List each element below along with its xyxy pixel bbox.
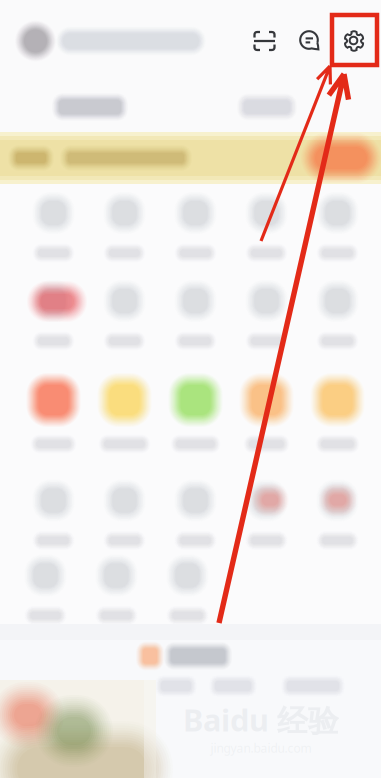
button[interactable]: Service — [231, 184, 302, 272]
button[interactable]: Service — [18, 474, 89, 549]
button[interactable]: Service — [160, 474, 231, 549]
button[interactable]: Service — [302, 367, 373, 474]
button[interactable]: Service — [89, 474, 160, 549]
button[interactable]: Service — [18, 367, 89, 474]
button[interactable]: Service — [231, 474, 302, 549]
button[interactable]: Service — [160, 272, 231, 367]
button[interactable]: Service — [231, 272, 302, 367]
button[interactable]: Recipe article — [0, 640, 381, 778]
button[interactable]: Service — [302, 272, 373, 367]
button[interactable]: Service — [81, 549, 152, 624]
button[interactable]: Service — [89, 184, 160, 272]
button[interactable]: Scan — [253, 29, 276, 52]
button[interactable]: Service — [231, 367, 302, 474]
button[interactable]: Tab one — [52, 93, 128, 121]
button[interactable]: Settings — [343, 30, 365, 52]
button[interactable]: Service — [302, 184, 373, 272]
button[interactable]: Service — [160, 367, 231, 474]
button[interactable]: Service — [302, 474, 373, 549]
button[interactable]: Service — [89, 272, 160, 367]
button[interactable]: Service — [152, 549, 223, 624]
button[interactable]: Service — [10, 549, 81, 624]
button[interactable]: Service — [18, 184, 89, 272]
button[interactable]: Promotion banner — [0, 132, 381, 184]
staticText: Baidu 经验 — [183, 699, 339, 740]
button[interactable]: Service — [89, 367, 160, 474]
button[interactable]: Tab two — [237, 93, 297, 120]
button[interactable]: Service — [160, 184, 231, 272]
button[interactable]: Messages — [299, 30, 321, 52]
button[interactable]: Service — [18, 272, 89, 367]
